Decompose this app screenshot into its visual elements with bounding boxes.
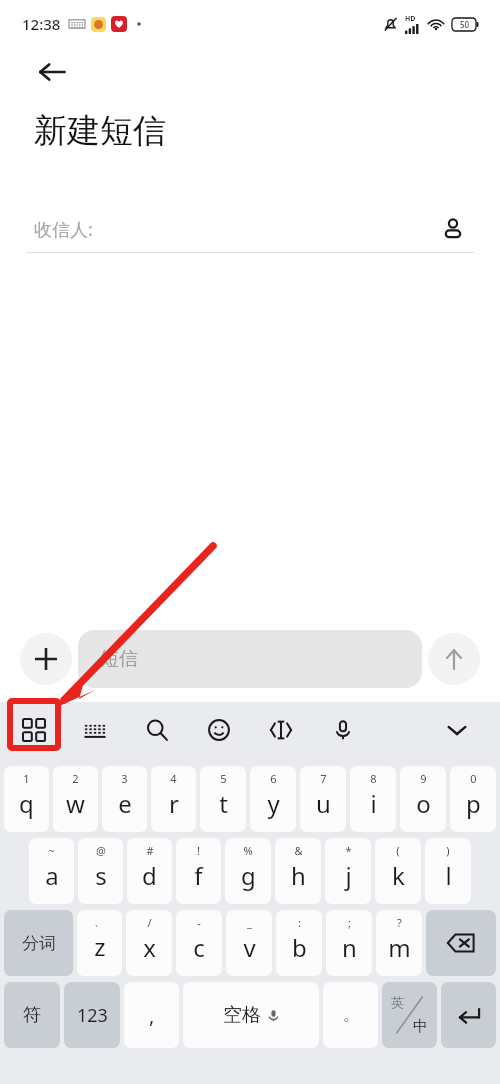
staticText: /	[147, 915, 152, 930]
button[interactable]: 0	[450, 766, 496, 832]
staticText: -	[197, 915, 201, 930]
button[interactable]: 7	[300, 766, 346, 832]
button[interactable]: 1	[4, 766, 49, 832]
staticText: i	[370, 787, 377, 820]
button[interactable]: Backspace	[426, 910, 496, 976]
staticText: v	[243, 931, 256, 964]
button[interactable]: 4	[151, 766, 196, 832]
button[interactable]: )	[425, 838, 471, 904]
button[interactable]: 分词	[4, 910, 73, 976]
button[interactable]: Send	[428, 633, 480, 685]
staticText: d	[142, 859, 157, 892]
staticText: (	[396, 843, 400, 858]
button[interactable]: _	[226, 910, 272, 976]
staticText: q	[19, 787, 34, 820]
button[interactable]: Choose contact	[432, 208, 474, 250]
button[interactable]: 符	[4, 982, 60, 1048]
button[interactable]: 9	[400, 766, 446, 832]
button[interactable]: Voice input	[320, 707, 366, 753]
staticText: 4	[170, 771, 177, 786]
button[interactable]: ;	[326, 910, 372, 976]
staticText: !	[197, 843, 200, 858]
staticText: z	[94, 930, 106, 963]
staticText: 7	[320, 771, 327, 786]
staticText: 0	[470, 771, 477, 786]
staticText: )	[446, 843, 450, 858]
staticText: y	[267, 787, 280, 820]
staticText: f	[194, 859, 203, 892]
staticText: m	[388, 931, 411, 964]
button[interactable]: &	[275, 838, 321, 904]
button[interactable]: (	[375, 838, 421, 904]
staticText: %	[243, 843, 253, 858]
button[interactable]: 6	[250, 766, 296, 832]
staticText: w	[66, 787, 85, 820]
staticText: *	[345, 843, 352, 858]
button[interactable]: English Chinese toggle	[382, 982, 437, 1048]
staticText: g	[241, 859, 256, 892]
button[interactable]: *	[325, 838, 371, 904]
staticText: ?	[397, 915, 402, 930]
staticText: e	[118, 787, 132, 820]
button[interactable]: Edit cursor	[258, 707, 304, 753]
staticText: 2	[72, 771, 79, 786]
staticText: 12:38	[22, 14, 61, 34]
button[interactable]: 123	[64, 982, 120, 1048]
button[interactable]: ?	[376, 910, 422, 976]
button[interactable]: 。	[323, 982, 378, 1048]
button[interactable]: :	[276, 910, 322, 976]
staticText: ;	[348, 915, 351, 930]
staticText: 空格	[223, 1003, 261, 1027]
staticText: 中	[413, 1017, 428, 1036]
staticText: 1	[23, 771, 30, 786]
button[interactable]: -	[176, 910, 222, 976]
staticText: x	[143, 931, 156, 964]
staticText: #	[146, 843, 154, 858]
button[interactable]: Search	[134, 707, 180, 753]
button[interactable]: Emoji	[196, 707, 242, 753]
staticText: ,	[149, 1002, 155, 1029]
staticText: HD	[405, 14, 416, 24]
staticText: o	[416, 787, 431, 820]
staticText: 6	[270, 771, 277, 786]
staticText: 3	[121, 771, 128, 786]
button[interactable]: Panels	[10, 706, 58, 754]
staticText: l	[445, 859, 452, 892]
staticText: 分词	[22, 933, 56, 954]
button[interactable]: 2	[53, 766, 98, 832]
button[interactable]: !	[176, 838, 221, 904]
button[interactable]: 3	[102, 766, 147, 832]
staticText: 收信人:	[34, 217, 93, 242]
staticText: ~	[48, 843, 55, 858]
button[interactable]: Keyboard layout	[72, 707, 118, 753]
button[interactable]: ,	[124, 982, 179, 1048]
button[interactable]: @	[78, 838, 123, 904]
button[interactable]: ~	[29, 838, 74, 904]
staticText: t	[219, 787, 228, 820]
staticText: k	[392, 859, 405, 892]
button[interactable]: %	[225, 838, 271, 904]
button[interactable]: /	[126, 910, 172, 976]
staticText: c	[193, 931, 205, 964]
staticText: p	[466, 787, 481, 820]
button[interactable]: 、	[77, 910, 122, 976]
button[interactable]: Add attachment	[20, 633, 72, 685]
staticText: @	[96, 843, 106, 858]
staticText: s	[95, 859, 107, 892]
staticText: &	[294, 843, 303, 858]
button[interactable]: 5	[200, 766, 246, 832]
button[interactable]: Enter	[441, 982, 496, 1048]
staticText: u	[316, 787, 331, 820]
button[interactable]: 短信	[100, 630, 422, 688]
staticText: n	[342, 931, 357, 964]
button[interactable]: 空格	[183, 982, 319, 1048]
staticText: 、	[94, 915, 105, 929]
staticText: a	[45, 859, 59, 892]
button[interactable]: Hide keyboard	[434, 707, 480, 753]
staticText: 5	[220, 771, 227, 786]
button[interactable]: 8	[350, 766, 396, 832]
button[interactable]: #	[127, 838, 172, 904]
staticText: b	[292, 931, 307, 964]
staticText: 50	[460, 19, 470, 30]
button[interactable]: Back	[28, 48, 76, 96]
